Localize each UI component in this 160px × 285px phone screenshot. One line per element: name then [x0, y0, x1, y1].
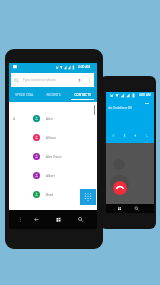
button[interactable]: Call option — [121, 132, 128, 139]
button[interactable]: Back — [33, 216, 40, 223]
button[interactable]: Albert — [9, 166, 97, 185]
button[interactable]: End call — [113, 181, 127, 195]
button[interactable]: Home — [55, 216, 62, 223]
staticText: A — [13, 116, 16, 121]
button[interactable]: Call option — [143, 132, 150, 139]
button[interactable]: Voice search — [76, 77, 83, 84]
button[interactable]: A — [9, 109, 97, 128]
button[interactable]: SPEED DIAL — [9, 87, 39, 102]
button[interactable]: Type a name or phone — [11, 73, 94, 87]
button[interactable]: Alex Victor — [9, 147, 97, 166]
button[interactable]: Home — [117, 206, 122, 211]
button[interactable]: Dial pad — [80, 189, 96, 205]
staticText: CONTACTS — [74, 92, 91, 96]
button[interactable]: Call option — [132, 132, 139, 139]
staticText: 4:00 AM — [78, 65, 91, 69]
staticText: RECENTS — [46, 92, 61, 96]
staticText: Alan — [46, 117, 53, 121]
button[interactable]: Call option — [110, 132, 117, 139]
button[interactable]: Brad — [9, 185, 97, 204]
button[interactable]: Menu — [17, 216, 24, 223]
button[interactable]: Allison — [9, 128, 97, 147]
staticText: Type a name or phone — [23, 78, 56, 82]
button[interactable]: Search — [134, 206, 139, 211]
staticText: Albert — [46, 174, 56, 178]
staticText: via Vodafone IN — [108, 106, 132, 110]
staticText: SPEED DIAL — [15, 92, 34, 96]
staticText: Allison — [46, 136, 56, 140]
button[interactable]: RECENTS — [39, 87, 68, 102]
staticText: 4:00 AM — [139, 93, 151, 97]
button[interactable]: CONTACTS — [68, 87, 97, 102]
staticText: Brad — [46, 193, 54, 197]
button[interactable]: More options — [86, 77, 93, 84]
staticText: Alex Victor — [46, 155, 62, 159]
button[interactable]: Search — [77, 216, 84, 223]
